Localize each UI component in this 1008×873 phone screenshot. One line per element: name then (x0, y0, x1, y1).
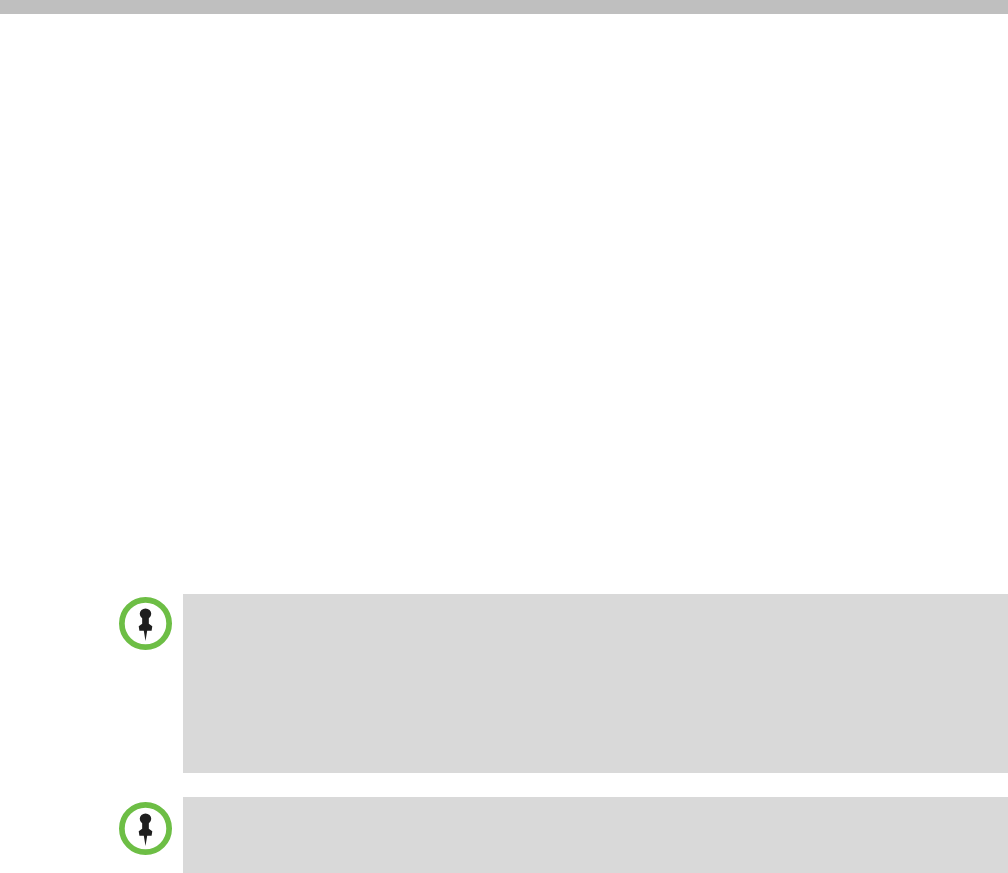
button[interactable]: Pinned location (119, 802, 172, 855)
other: Pinned location (119, 597, 172, 650)
other: Pinned location (119, 802, 172, 855)
button[interactable]: Pinned location (119, 597, 172, 650)
